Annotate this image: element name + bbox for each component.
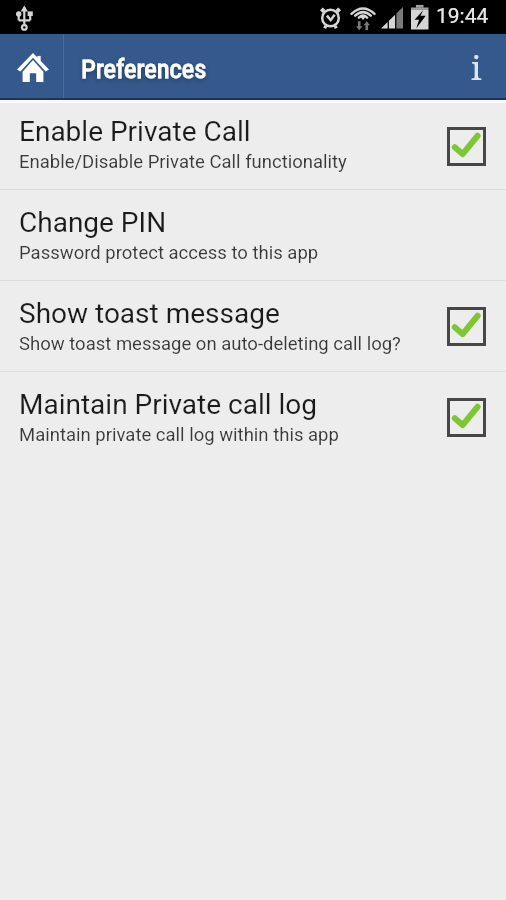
staticText: Enable Private Call xyxy=(19,115,251,148)
button[interactable]: Change PIN xyxy=(0,190,506,280)
button[interactable]: Home xyxy=(0,34,63,98)
staticText: Change PIN xyxy=(19,206,167,239)
button[interactable]: Show toast message xyxy=(0,281,506,371)
staticText: 19:44 xyxy=(436,4,489,29)
button[interactable]: Enable Private Call xyxy=(0,103,506,189)
button[interactable]: Maintain Private call log xyxy=(0,372,506,462)
staticText: Show toast message on auto-deleting call… xyxy=(19,333,401,355)
staticText: Show toast message xyxy=(19,297,280,330)
staticText: i xyxy=(471,45,482,90)
button[interactable]: Info xyxy=(450,34,506,98)
staticText: Preferences xyxy=(81,53,207,84)
staticText: Password protect access to this app xyxy=(19,242,319,264)
staticText: Maintain Private call log xyxy=(19,388,318,421)
staticText: Maintain private call log within this ap… xyxy=(19,424,339,446)
staticText: Enable/Disable Private Call functionalit… xyxy=(19,151,347,173)
